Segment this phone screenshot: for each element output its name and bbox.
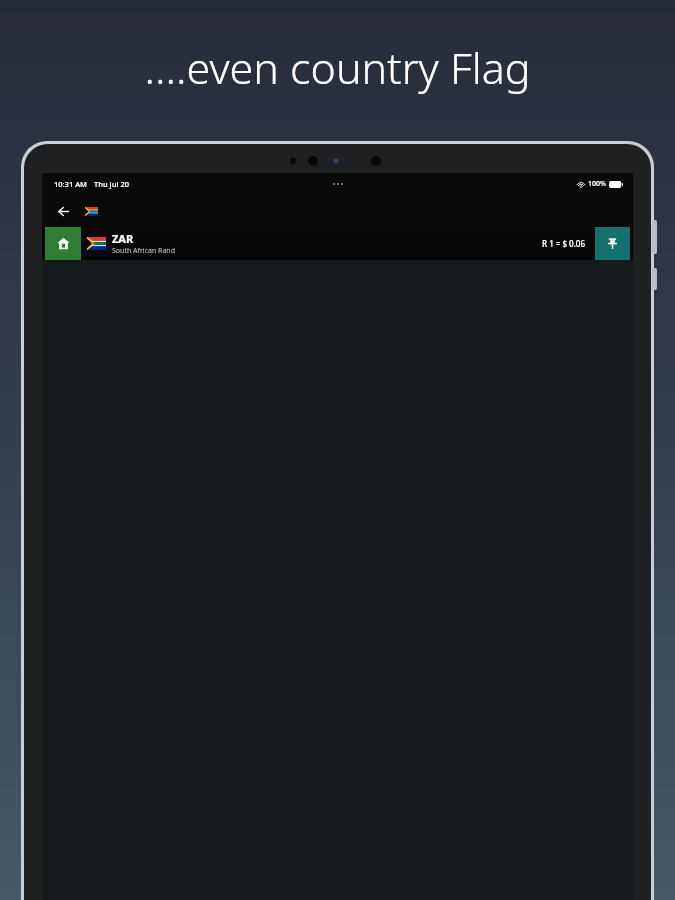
button[interactable]: Home currency [45, 227, 630, 260]
staticText: ZAR [112, 231, 134, 246]
staticText: Thu Jul 20 [94, 179, 130, 189]
staticText: R 1 = $ 0.06 [542, 238, 586, 249]
button[interactable]: Country flag [82, 203, 100, 219]
staticText: 10:31 AM [54, 179, 87, 189]
button[interactable]: Back [52, 200, 74, 222]
button[interactable]: Home currency [45, 227, 81, 260]
staticText: South African Rand [112, 246, 175, 256]
staticText: 100% [588, 179, 606, 189]
staticText: ....even country Flag [0, 38, 675, 97]
button[interactable]: Pin currency [595, 227, 630, 260]
